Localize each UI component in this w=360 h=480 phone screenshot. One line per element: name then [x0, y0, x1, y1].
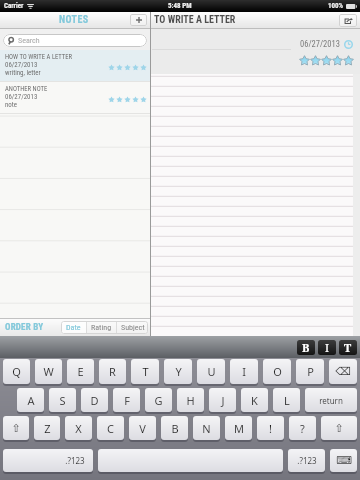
button[interactable]: Date — [61, 321, 86, 334]
button[interactable]: Z — [34, 416, 60, 440]
staticText: G — [154, 393, 163, 408]
button[interactable]: R — [99, 359, 126, 384]
staticText: ? — [300, 421, 305, 436]
staticText: I — [325, 340, 330, 355]
button[interactable]: N — [193, 416, 220, 440]
staticText: ORDER BY — [5, 322, 44, 333]
staticText: Date — [66, 323, 81, 332]
staticText: P — [307, 364, 314, 379]
button[interactable]: Share — [339, 14, 357, 27]
button[interactable]: M — [225, 416, 252, 440]
staticText: D — [90, 393, 99, 408]
staticText: Rating — [91, 323, 112, 332]
staticText: H — [186, 393, 195, 408]
button[interactable]: Add note — [130, 14, 147, 26]
staticText: 06/27/2013 — [5, 93, 38, 101]
staticText: A — [27, 393, 35, 408]
staticText: TO WRITE A LETTER — [154, 14, 236, 26]
button[interactable]: ANOTHER NOTE — [0, 82, 150, 114]
button[interactable]: ! — [257, 416, 284, 440]
staticText: .?123 — [65, 455, 85, 466]
button[interactable]: P — [296, 359, 324, 384]
button[interactable]: .?123 — [3, 449, 93, 472]
button[interactable]: W — [35, 359, 62, 384]
staticText: C — [107, 421, 114, 436]
button[interactable]: Search — [3, 34, 147, 47]
staticText: I — [242, 364, 246, 379]
staticText: ⌫ — [335, 365, 351, 378]
staticText: M — [234, 421, 244, 436]
button[interactable]: G — [145, 388, 172, 412]
staticText: L — [284, 393, 290, 408]
button[interactable]: S — [49, 388, 76, 412]
staticText: V — [139, 421, 146, 436]
button[interactable]: return — [305, 388, 357, 412]
button[interactable]: X — [65, 416, 92, 440]
button[interactable]: V — [129, 416, 156, 440]
staticText: ⇧ — [334, 422, 344, 435]
staticText: Z — [44, 421, 51, 436]
button[interactable]: I — [318, 340, 336, 355]
button[interactable]: ⌫ — [329, 359, 357, 384]
button[interactable]: .?123 — [288, 449, 325, 472]
button[interactable]: O — [263, 359, 291, 384]
staticText: E — [77, 364, 84, 379]
staticText: Q — [12, 364, 21, 379]
button[interactable]: Q — [3, 359, 30, 384]
staticText: K — [251, 393, 258, 408]
button[interactable] — [98, 449, 283, 472]
staticText: Search — [18, 36, 40, 45]
button[interactable]: Y — [164, 359, 192, 384]
staticText: 06/27/2013 — [300, 39, 340, 49]
staticText: ! — [269, 421, 272, 436]
staticText: Y — [175, 364, 182, 379]
staticText: T — [344, 340, 352, 355]
button[interactable]: Rating — [87, 321, 116, 334]
button[interactable]: B — [161, 416, 188, 440]
staticText: writing, letter — [5, 69, 41, 77]
staticText: J — [221, 393, 225, 408]
staticText: S — [59, 393, 66, 408]
staticText: note — [5, 101, 18, 109]
button[interactable]: L — [273, 388, 300, 412]
staticText: O — [273, 364, 282, 379]
staticText: U — [207, 364, 216, 379]
button[interactable]: T — [131, 359, 159, 384]
button[interactable]: J — [209, 388, 236, 412]
staticText: Subject — [121, 323, 145, 332]
staticText: ANOTHER NOTE — [5, 85, 48, 93]
button[interactable]: T — [339, 340, 357, 355]
staticText: .?123 — [297, 455, 317, 466]
staticText: F — [124, 393, 130, 408]
staticText: N — [202, 421, 211, 436]
button[interactable]: U — [197, 359, 225, 384]
staticText: T — [142, 364, 149, 379]
button[interactable]: E — [67, 359, 94, 384]
button[interactable]: HOW TO WRITE A LETTER — [0, 50, 150, 82]
button[interactable]: A — [17, 388, 44, 412]
button[interactable]: K — [241, 388, 268, 412]
button[interactable]: ? — [289, 416, 316, 440]
staticText: 5:48 PM — [168, 2, 192, 10]
staticText: 06/27/2013 — [5, 61, 38, 69]
staticText: W — [43, 364, 54, 379]
staticText: return — [319, 395, 343, 406]
button[interactable]: H — [177, 388, 204, 412]
staticText: Carrier — [4, 2, 24, 10]
button[interactable]: I — [230, 359, 258, 384]
button[interactable]: D — [81, 388, 108, 412]
staticText: 100% — [328, 2, 344, 10]
button[interactable]: C — [97, 416, 124, 440]
staticText: B — [171, 421, 179, 436]
staticText: HOW TO WRITE A LETTER — [5, 53, 73, 61]
button[interactable]: ⌨ — [330, 449, 357, 472]
staticText: B — [302, 340, 310, 355]
staticText: ⇧ — [11, 422, 21, 435]
button[interactable]: F — [113, 388, 140, 412]
button[interactable]: Subject — [117, 321, 148, 334]
button[interactable]: ⇧ — [3, 416, 29, 440]
button[interactable]: B — [297, 340, 315, 355]
staticText: X — [75, 421, 82, 436]
button[interactable]: ⇧ — [321, 416, 357, 440]
staticText: NOTES — [59, 14, 89, 26]
